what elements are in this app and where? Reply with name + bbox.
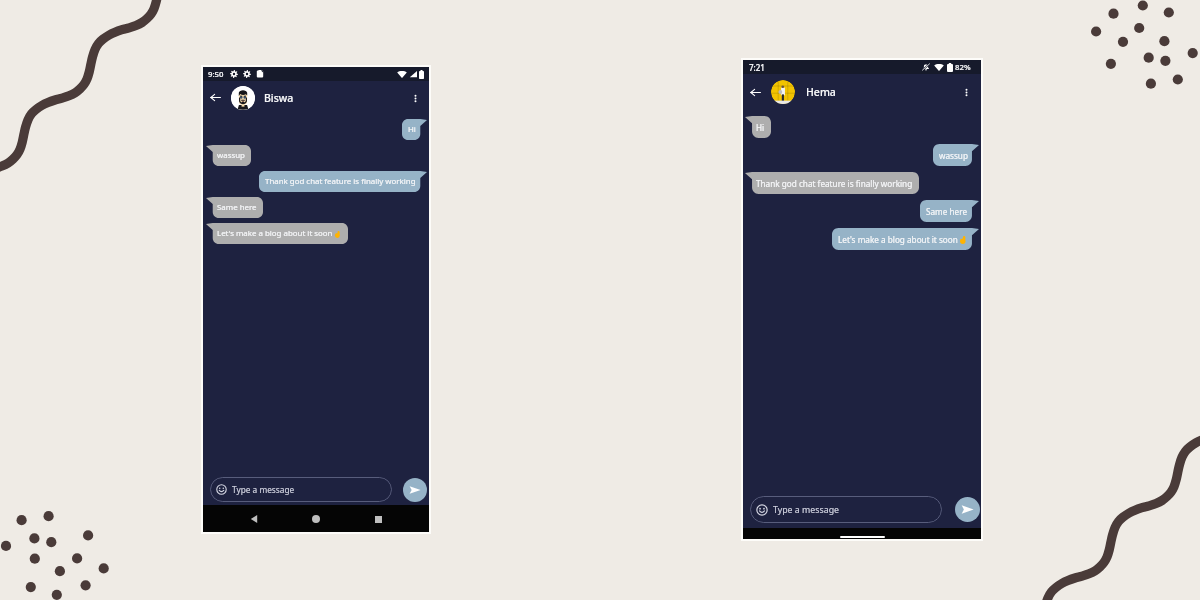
staticText: wassup [217,150,245,161]
button[interactable]: Back [208,90,223,105]
staticText: 7:21 [749,62,765,73]
button[interactable]: Home [305,508,327,530]
button[interactable]: Type a message [210,477,392,502]
button[interactable]: Thank god chat feature is finally workin… [259,171,427,192]
staticText: Same here [217,202,257,213]
button[interactable]: Send [403,478,427,502]
staticText: Let's make a blog about it soon [838,234,958,245]
button[interactable]: Let's make a blog about it soon [832,228,979,250]
button[interactable]: Profile photo [231,86,255,110]
button[interactable]: Thank god chat feature is finally workin… [745,172,919,194]
staticText: 9:50 [208,69,224,80]
button[interactable]: More options [959,85,973,99]
button[interactable]: Recents [367,508,389,530]
button[interactable]: Same here [920,200,979,222]
button[interactable]: wassup [206,145,251,166]
staticText: Hi [408,124,416,135]
button[interactable]: More options [408,91,422,105]
staticText: Same here [926,206,968,217]
staticText: wassup [939,150,968,161]
staticText: Let's make a blog about it soon [217,228,333,239]
button[interactable]: wassup [933,144,979,166]
button[interactable]: Let's make a blog about it soon [206,223,348,244]
staticText: Type a message [773,504,840,516]
staticText: Thank god chat feature is finally workin… [265,176,416,187]
button[interactable]: Hi [402,119,427,140]
staticText: Biswa [264,91,294,105]
staticText: 82% [955,62,971,73]
button[interactable]: Back [748,85,763,100]
button[interactable]: Send [955,497,980,522]
staticText: Thank god chat feature is finally workin… [756,178,913,189]
button[interactable]: Back [243,508,265,530]
button[interactable]: Hi [745,116,771,138]
button[interactable]: Same here [206,197,263,218]
staticText: Hema [806,85,836,99]
button[interactable]: Type a message [750,496,942,523]
staticText: Hi [756,122,765,133]
button[interactable]: Profile photo [771,80,795,104]
staticText: Type a message [232,484,295,495]
